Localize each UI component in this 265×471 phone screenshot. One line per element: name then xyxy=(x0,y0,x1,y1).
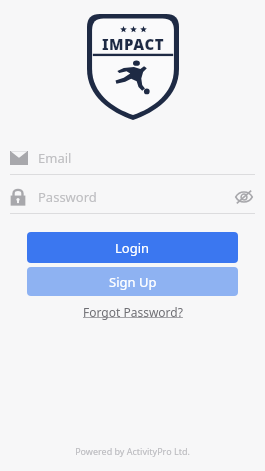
staticText: Sign Up xyxy=(109,273,157,291)
staticText: IMPACT xyxy=(102,34,165,54)
button[interactable]: Toggle password visibility xyxy=(233,186,255,208)
staticText: Login xyxy=(115,239,150,257)
staticText: Forgot Password? xyxy=(83,304,183,320)
staticText: Email xyxy=(38,149,72,167)
button[interactable]: Login xyxy=(27,232,238,263)
button[interactable]: Sign Up xyxy=(27,267,238,296)
staticText: Powered by ActivityPro Ltd. xyxy=(75,445,190,457)
button[interactable]: Forgot Password? xyxy=(77,302,189,322)
staticText: Password xyxy=(38,188,233,206)
button[interactable]: Password xyxy=(0,181,265,213)
button[interactable]: Email xyxy=(0,142,265,174)
